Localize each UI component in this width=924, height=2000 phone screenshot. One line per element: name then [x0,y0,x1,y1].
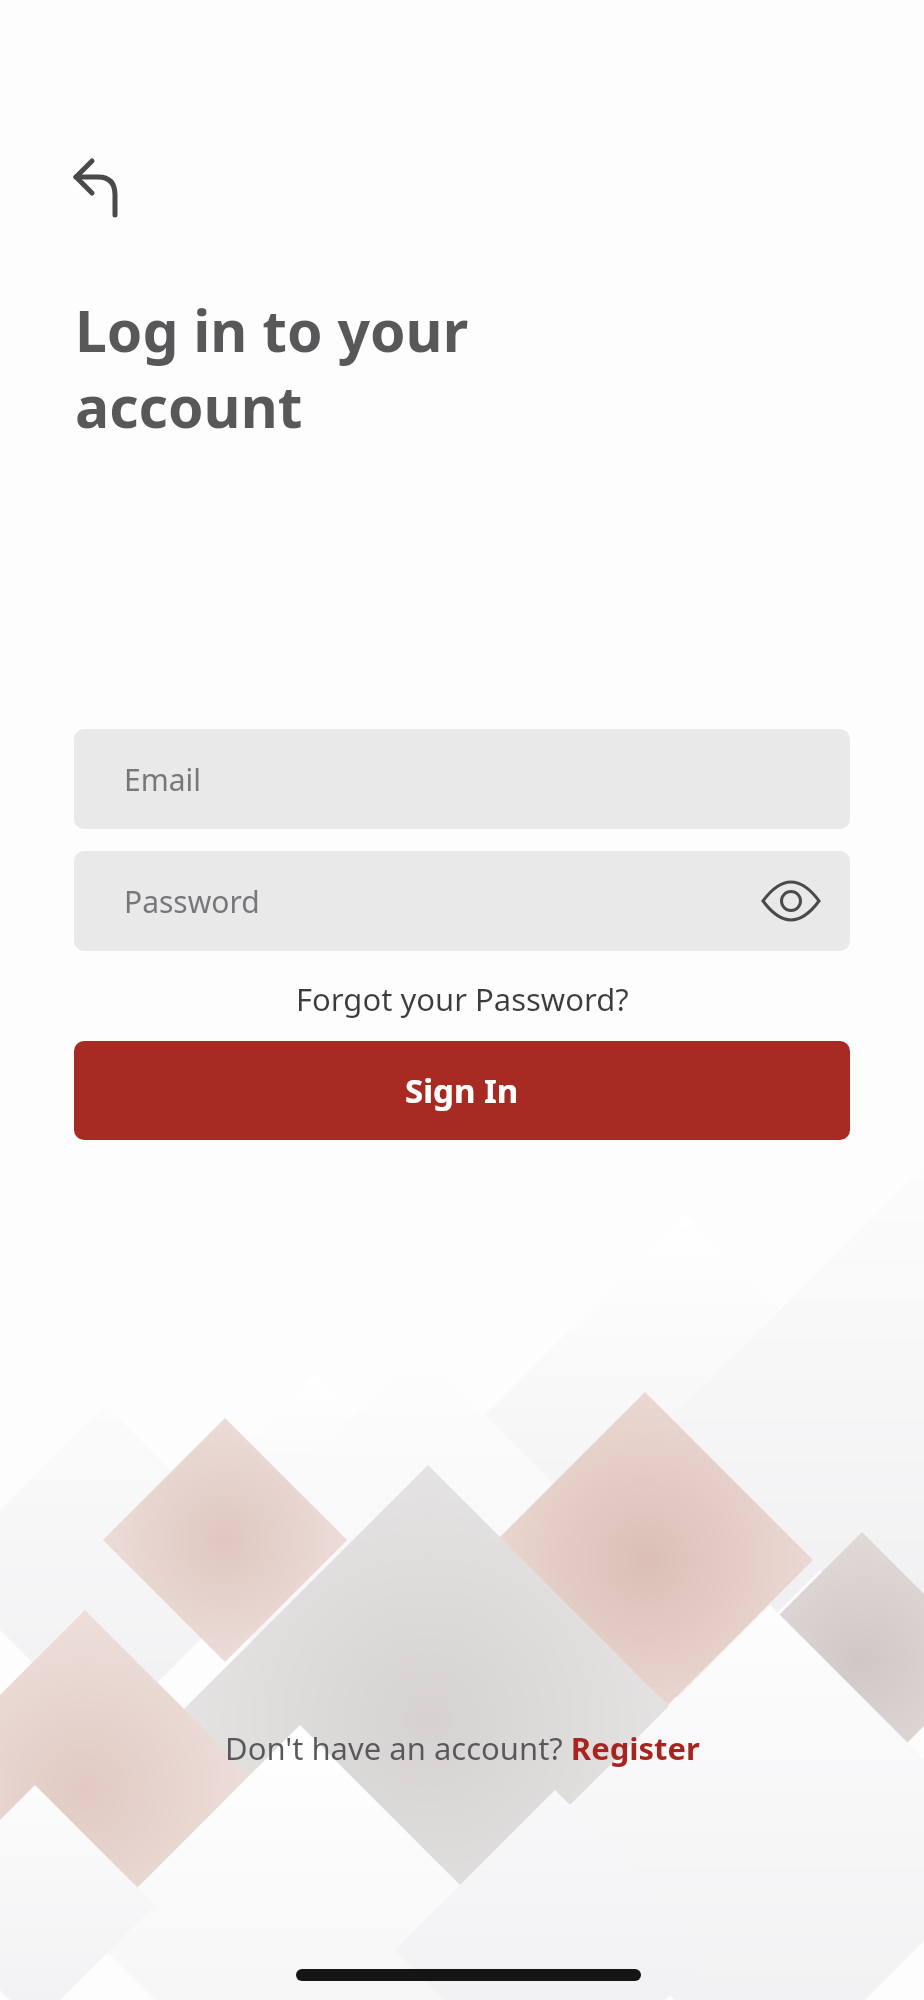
button[interactable]: Don't have an account? Register [225,1727,700,1769]
staticText: Log in to your account [75,291,469,444]
button[interactable]: Email [74,729,850,829]
button[interactable]: Password [74,851,850,951]
button[interactable] [60,146,132,218]
staticText: Password [124,881,260,922]
button[interactable]: Forgot your Password? [296,978,629,1020]
staticText: Email [124,759,202,800]
button[interactable]: Sign In [74,1041,850,1140]
staticText: Sign In [405,1068,519,1113]
